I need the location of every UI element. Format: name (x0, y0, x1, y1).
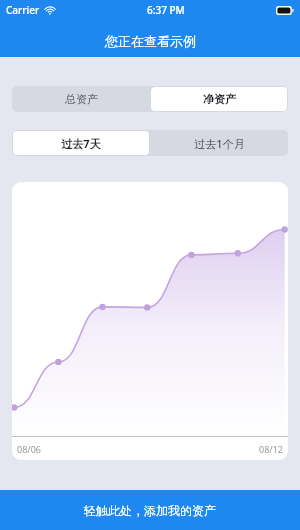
button[interactable]: 08/06 (12, 182, 288, 460)
staticText: 轻触此处，添加我的资产 (84, 503, 216, 518)
staticText: 过去1个月 (194, 136, 245, 151)
staticText: 过去7天 (61, 136, 101, 151)
other: Wi-Fi signal (44, 5, 56, 15)
button[interactable]: 总资产 (13, 87, 149, 111)
staticText: 08/06 (17, 443, 41, 455)
staticText: 08/12 (259, 443, 283, 455)
button[interactable]: 轻触此处，添加我的资产 (0, 490, 300, 530)
button[interactable]: 过去1个月 (151, 131, 287, 155)
staticText: 净资产 (203, 92, 236, 106)
staticText: 您正在查看示例 (105, 33, 196, 49)
other: Battery full (276, 6, 294, 15)
button[interactable]: 净资产 (151, 87, 287, 111)
staticText: 总资产 (65, 92, 98, 106)
staticText: Carrier (6, 3, 40, 17)
staticText: 6:37 PM (147, 3, 185, 17)
button[interactable]: 过去7天 (13, 131, 149, 155)
